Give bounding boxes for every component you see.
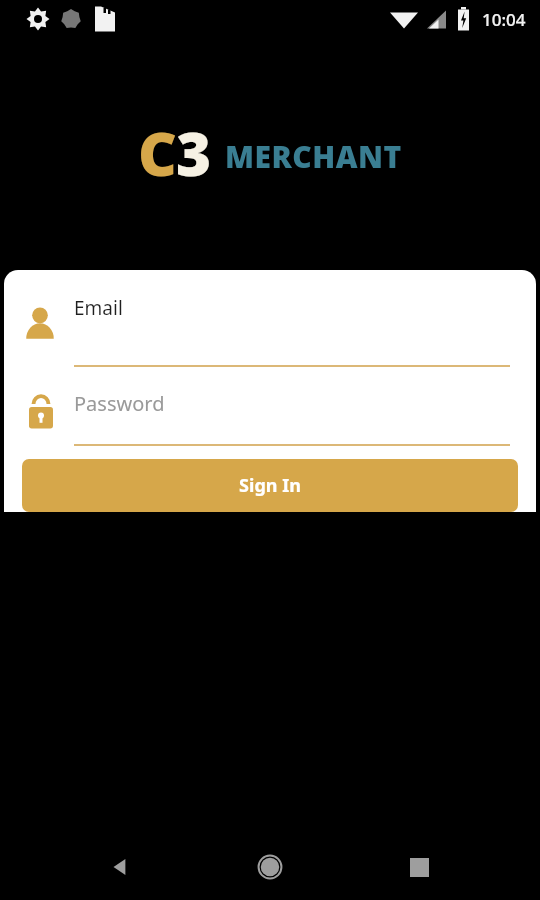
- button[interactable]: Recent apps: [396, 844, 442, 890]
- button[interactable]: Back: [98, 844, 144, 890]
- staticText: C: [138, 112, 176, 194]
- staticText: Email: [74, 295, 123, 321]
- button[interactable]: Email: [4, 270, 536, 370]
- button[interactable]: Password: [4, 378, 536, 458]
- staticText: Password: [74, 390, 165, 417]
- staticText: 10:04: [482, 8, 526, 31]
- staticText: 3: [176, 112, 211, 194]
- staticText: Sign In: [239, 473, 301, 498]
- button[interactable]: Home: [247, 844, 293, 890]
- button[interactable]: Sign In: [22, 459, 518, 512]
- staticText: MERCHANT: [225, 136, 402, 177]
